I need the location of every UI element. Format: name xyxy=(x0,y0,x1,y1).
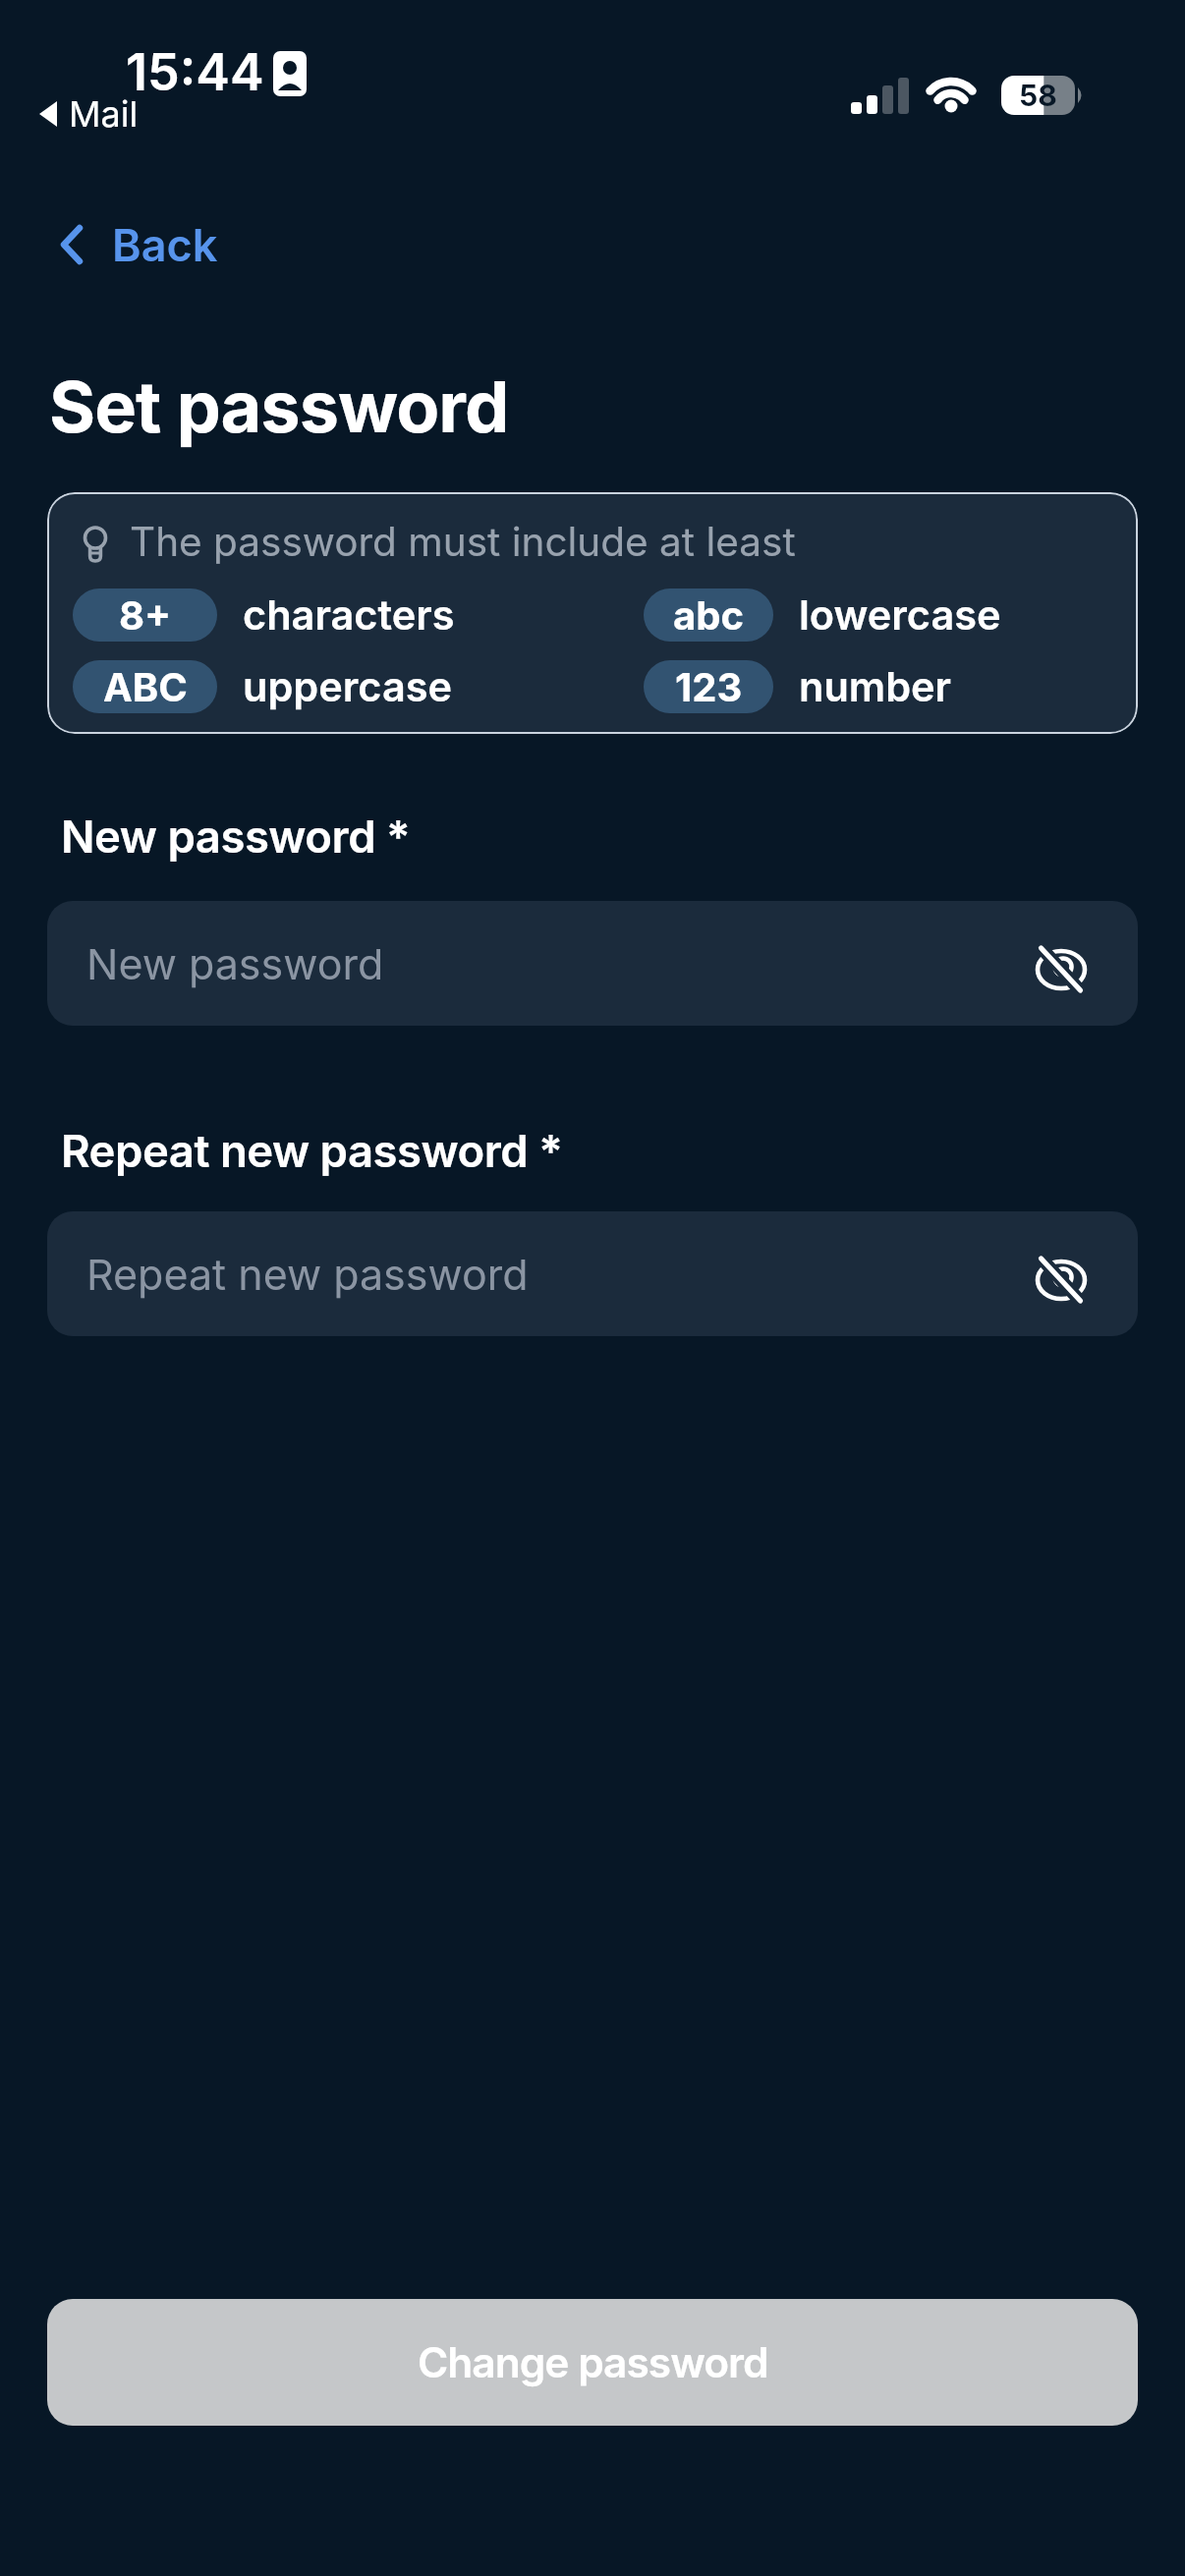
staticText: uppercase xyxy=(243,662,453,711)
button[interactable]: Back xyxy=(57,218,218,271)
staticText: Change password xyxy=(418,2337,768,2387)
staticText: New password * xyxy=(61,810,411,864)
staticText: The password must include at least xyxy=(130,518,796,566)
staticText: Set password xyxy=(49,364,509,449)
staticText: abc xyxy=(673,591,744,639)
staticText: New password xyxy=(86,938,384,989)
staticText: Mail xyxy=(69,92,139,136)
staticText: 123 xyxy=(675,663,743,710)
staticText: Back xyxy=(112,218,218,271)
staticText: Repeat new password xyxy=(86,1249,529,1300)
button[interactable]: New password xyxy=(47,901,1138,1026)
staticText: Repeat new password * xyxy=(61,1124,563,1178)
staticText: characters xyxy=(243,590,455,640)
button[interactable]: Repeat new password xyxy=(47,1211,1138,1336)
staticText: number xyxy=(799,662,952,711)
staticText: ABC xyxy=(103,663,188,710)
staticText: 8+ xyxy=(119,591,172,639)
staticText: lowercase xyxy=(799,590,1001,640)
staticText: 58 xyxy=(1019,78,1057,113)
button[interactable]: Change password xyxy=(47,2299,1138,2426)
staticText: 15:44 xyxy=(126,41,264,103)
